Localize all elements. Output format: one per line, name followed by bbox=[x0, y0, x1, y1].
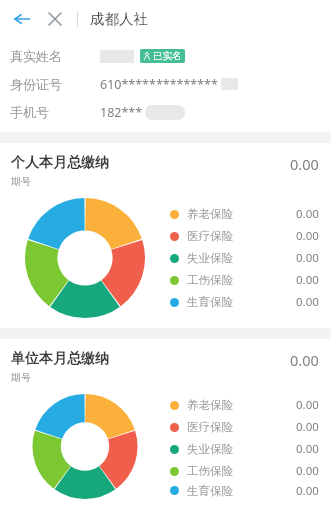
staticText: 0.00 bbox=[296, 397, 319, 413]
staticText: 0.00 bbox=[296, 228, 319, 244]
staticText: 生育保险 bbox=[187, 484, 233, 498]
staticText: 单位本月总缴纳 bbox=[11, 350, 109, 368]
staticText: 0.00 bbox=[296, 294, 319, 310]
staticText: 失业保险 bbox=[187, 251, 233, 265]
staticText: 工伤保险 bbox=[187, 464, 233, 478]
button[interactable]: 养老保险 bbox=[170, 394, 319, 416]
button[interactable]: 失业保险 bbox=[170, 247, 319, 269]
button[interactable]: 失业保险 bbox=[170, 438, 319, 460]
staticText: 0.00 bbox=[296, 441, 319, 457]
staticText: 0.00 bbox=[296, 483, 319, 499]
staticText: 医疗保险 bbox=[187, 229, 233, 243]
staticText: 工伤保险 bbox=[187, 273, 233, 287]
staticText: 0.00 bbox=[296, 419, 319, 435]
button[interactable]: 医疗保险 bbox=[170, 416, 319, 438]
staticText: 失业保险 bbox=[187, 442, 233, 456]
button[interactable]: 工伤保险 bbox=[170, 269, 319, 291]
staticText: 已实名 bbox=[153, 50, 182, 62]
staticText: 0.00 bbox=[296, 206, 319, 222]
button[interactable]: 养老保险 bbox=[170, 203, 319, 225]
button[interactable]: 医疗保险 bbox=[170, 225, 319, 247]
button[interactable]: Close bbox=[40, 4, 70, 34]
staticText: 养老保险 bbox=[187, 398, 233, 412]
staticText: 养老保险 bbox=[187, 207, 233, 221]
staticText: 生育保险 bbox=[187, 295, 233, 309]
staticText: 0.00 bbox=[296, 463, 319, 479]
button[interactable]: Back bbox=[6, 3, 38, 35]
staticText: 0.00 bbox=[296, 250, 319, 266]
staticText: 身份证号 bbox=[10, 76, 62, 92]
button[interactable]: 生育保险 bbox=[170, 482, 319, 499]
button[interactable]: 工伤保险 bbox=[170, 460, 319, 482]
staticText: 期号 bbox=[11, 371, 31, 384]
staticText: 手机号 bbox=[10, 104, 49, 120]
staticText: 个人本月总缴纳 bbox=[11, 154, 109, 172]
button[interactable]: 生育保险 bbox=[170, 291, 319, 313]
staticText: 期号 bbox=[11, 175, 31, 188]
button[interactable]: 已实名 bbox=[143, 50, 182, 62]
staticText: 真实姓名 bbox=[10, 48, 62, 64]
staticText: 成都人社 bbox=[90, 10, 148, 28]
staticText: 610************** bbox=[100, 76, 218, 93]
staticText: 182*** bbox=[100, 104, 143, 121]
staticText: 医疗保险 bbox=[187, 420, 233, 434]
staticText: 0.00 bbox=[290, 154, 319, 174]
staticText: 0.00 bbox=[296, 272, 319, 288]
staticText: 0.00 bbox=[290, 350, 319, 370]
